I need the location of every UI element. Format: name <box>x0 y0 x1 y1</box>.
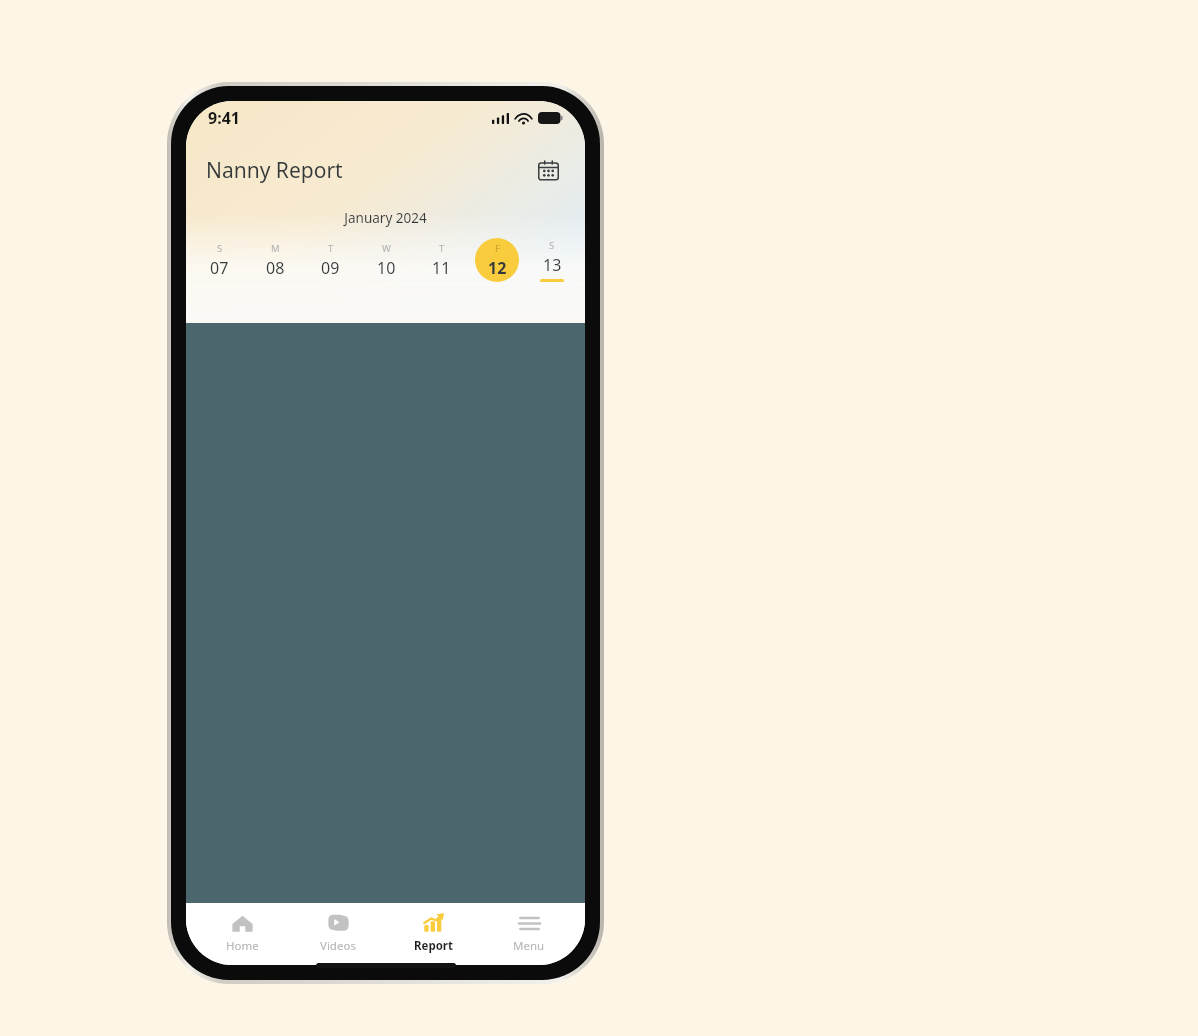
staticText: 9:41 <box>208 107 240 129</box>
staticText: Report <box>414 938 453 954</box>
button[interactable]: M <box>252 237 298 283</box>
button[interactable]: F <box>474 237 520 283</box>
staticText: Videos <box>320 938 356 954</box>
staticText: January 2024 <box>186 209 585 227</box>
staticText: 07 <box>210 257 229 279</box>
staticText: 11 <box>432 257 451 279</box>
button[interactable]: Videos <box>299 909 377 956</box>
staticText: T <box>439 242 445 255</box>
staticText: 09 <box>321 257 340 279</box>
button[interactable]: Report <box>394 909 472 956</box>
staticText: S <box>217 242 223 255</box>
staticText: Home <box>226 938 259 954</box>
staticText: 13 <box>543 254 562 276</box>
staticText: Nanny Report <box>206 156 343 185</box>
button[interactable]: Menu <box>490 909 568 956</box>
button[interactable]: Calendar <box>531 153 565 187</box>
staticText: Menu <box>513 938 545 954</box>
button[interactable]: S <box>529 237 575 283</box>
button[interactable]: T <box>418 237 464 283</box>
button[interactable]: Home <box>203 909 281 956</box>
staticText: T <box>328 242 334 255</box>
button[interactable]: W <box>363 237 409 283</box>
staticText: 08 <box>266 257 285 279</box>
button[interactable]: T <box>307 237 353 283</box>
staticText: M <box>271 242 280 255</box>
staticText: 10 <box>377 257 396 279</box>
button[interactable]: S <box>196 237 242 283</box>
staticText: W <box>382 242 391 255</box>
staticText: S <box>549 239 555 252</box>
staticText: F <box>495 242 500 255</box>
staticText: 12 <box>488 257 507 279</box>
